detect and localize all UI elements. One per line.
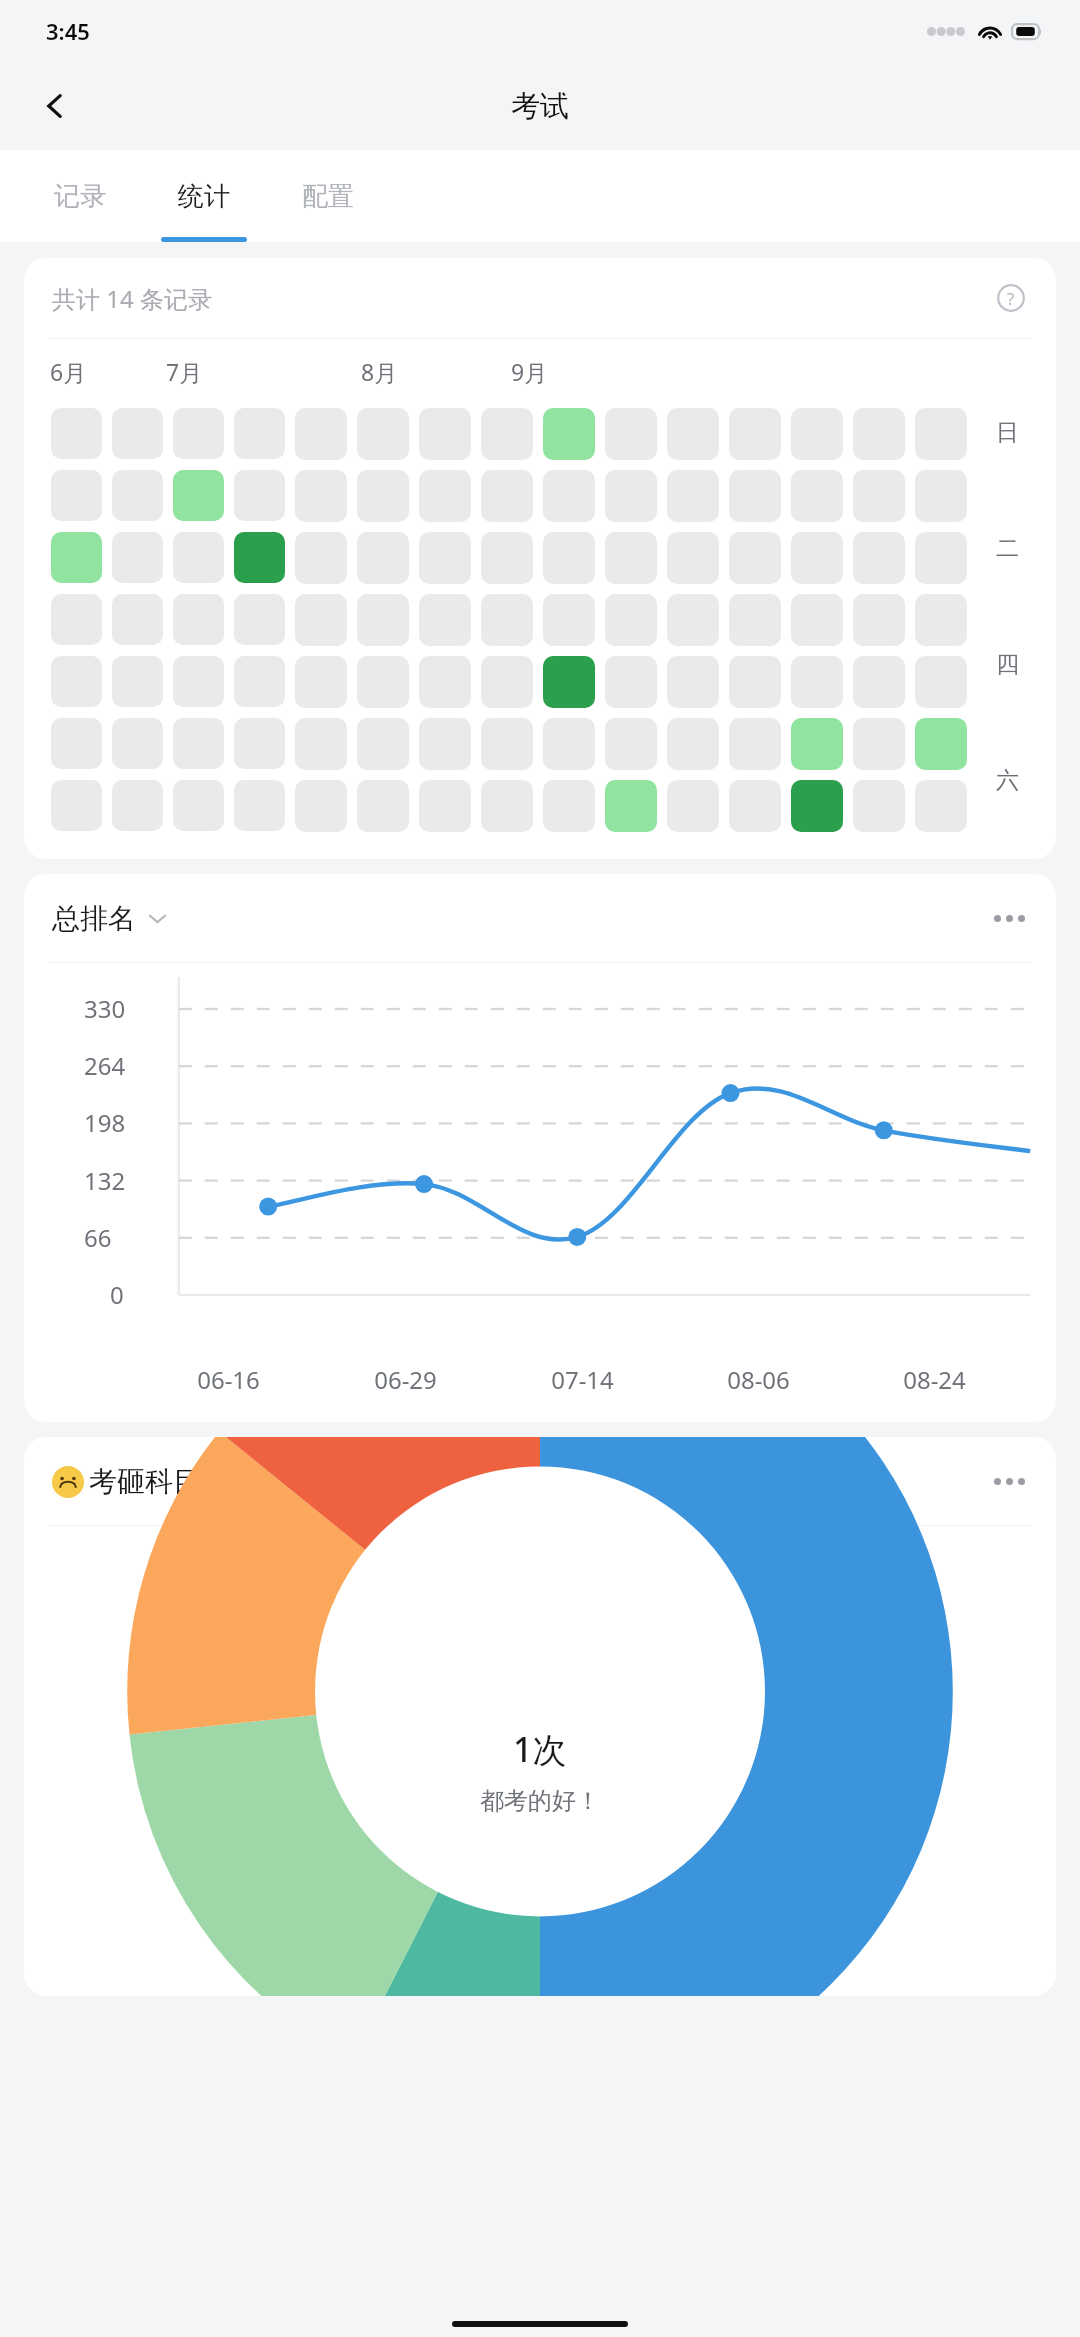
staticText: 9月 [511,356,548,387]
staticText: 共计 14 条记录 [52,282,212,315]
staticText: 四 [996,650,1019,679]
staticText: 330 [84,992,126,1025]
staticText: 都考的好！ [480,1786,600,1816]
button[interactable]: Help [988,275,1034,321]
staticText: ? [1007,287,1015,310]
staticText: 08-06 [727,1363,790,1396]
staticText: 3:45 [46,16,90,46]
staticText: 132 [84,1164,126,1197]
staticText: 统计 [178,180,230,213]
staticText: 总排名 [52,901,136,936]
staticText: 六 [996,766,1019,795]
button[interactable]: More options [982,1454,1036,1508]
staticText: 考试 [511,88,569,125]
staticText: 8月 [361,356,398,387]
staticText: 0 [110,1278,124,1311]
staticText: 264 [84,1049,126,1082]
staticText: 06-29 [374,1363,437,1396]
staticText: 66 [84,1221,112,1254]
staticText: 考砸科目 [89,1464,201,1499]
staticText: 日 [996,418,1019,447]
staticText: 二 [996,534,1019,563]
staticText: 1次 [513,1726,567,1772]
staticText: 配置 [302,180,354,213]
staticText: 6月 [50,356,87,387]
staticText: 记录 [54,180,106,213]
button[interactable]: Back [26,77,84,135]
staticText: 06-16 [197,1363,260,1396]
button[interactable]: 记录 [18,150,142,242]
staticText: 198 [84,1106,126,1139]
button[interactable]: 配置 [266,150,390,242]
staticText: 08-24 [903,1363,966,1396]
button[interactable]: More options [982,891,1036,945]
staticText: 07-14 [551,1363,614,1396]
staticText: 7月 [166,356,203,387]
button[interactable]: 统计 [142,150,266,242]
